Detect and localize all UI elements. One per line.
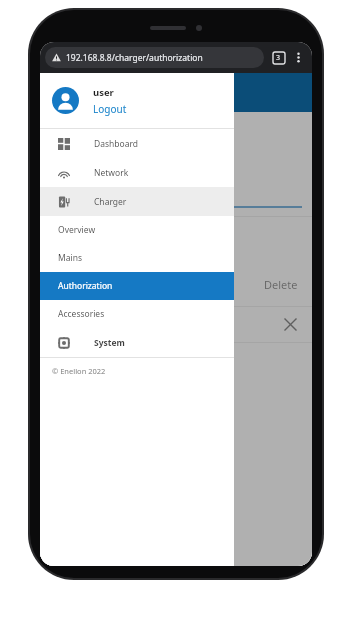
staticText: System <box>94 337 125 349</box>
staticText: Charger <box>94 196 127 208</box>
button[interactable]: More options <box>290 49 307 66</box>
button[interactable]: 192.168.8.8/charger/authorization <box>45 47 264 68</box>
button[interactable]: Accessories <box>40 300 234 328</box>
staticText: Delete <box>264 277 298 292</box>
staticText: Mains <box>58 252 82 264</box>
staticText: user <box>93 86 114 99</box>
staticText: Overview <box>58 224 96 236</box>
staticText: Accessories <box>58 308 105 320</box>
staticText: Dashboard <box>94 138 139 150</box>
staticText: Authorization <box>58 280 113 292</box>
staticText: Tags <box>54 235 86 255</box>
button[interactable]: Mains <box>40 244 234 272</box>
staticText: Network <box>94 167 129 179</box>
staticText: Authorization <box>54 136 195 166</box>
button[interactable]: Overview <box>40 216 234 244</box>
button[interactable]: Authorization <box>40 272 234 300</box>
button[interactable]: Logout <box>93 102 127 116</box>
button[interactable]: System <box>40 328 234 357</box>
button[interactable]: Dashboard <box>40 129 234 158</box>
staticText: 192.168.8.8/charger/authorization <box>66 52 203 64</box>
button[interactable] <box>40 112 312 566</box>
button[interactable]: Network <box>40 158 234 187</box>
staticText: 3 <box>276 53 281 63</box>
button[interactable]: Charger <box>40 187 234 216</box>
button[interactable]: Tabs <box>270 49 287 66</box>
staticText: © Enellon 2022 <box>52 366 106 376</box>
button[interactable]: user <box>40 73 234 128</box>
